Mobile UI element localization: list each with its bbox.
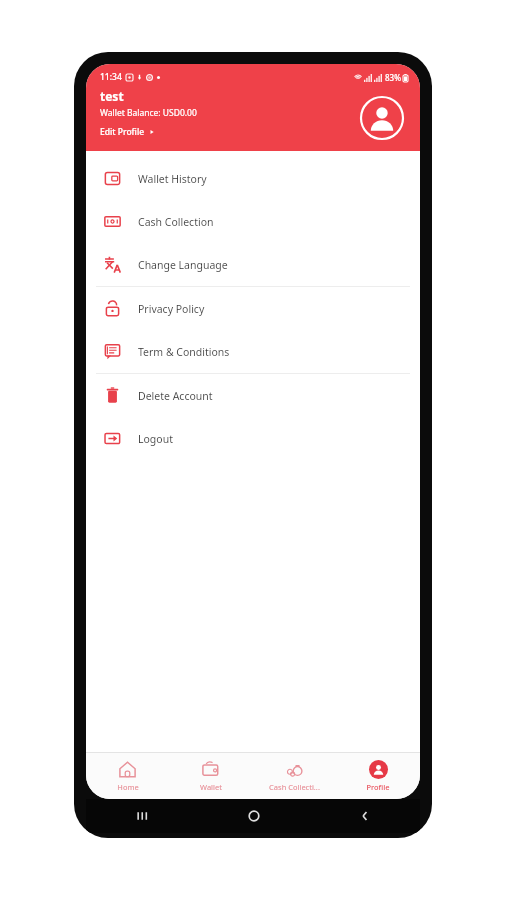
button[interactable]: Privacy Policy	[86, 287, 420, 330]
staticText: Cash Collection	[138, 215, 214, 229]
button[interactable]: Profile avatar	[360, 96, 404, 140]
button[interactable]: Wallet	[169, 753, 252, 799]
staticText: Wallet History	[138, 172, 207, 186]
staticText: Logout	[138, 432, 173, 446]
button[interactable]: Home	[198, 799, 309, 833]
button[interactable]: Wallet History	[86, 157, 420, 200]
staticText: 83%	[385, 72, 401, 83]
button[interactable]: Home	[86, 753, 169, 799]
button[interactable]: Change Language	[86, 243, 420, 286]
button[interactable]: Term & Conditions	[86, 330, 420, 373]
button[interactable]: Cash Collection	[86, 200, 420, 243]
button[interactable]: Logout	[86, 417, 420, 460]
staticText: Wallet	[200, 782, 222, 792]
staticText: Change Language	[138, 258, 228, 272]
staticText: Delete Account	[138, 389, 213, 403]
button[interactable]: Cash Collecti...	[252, 753, 336, 799]
button[interactable]: Recents	[86, 799, 198, 833]
staticText: Cash Collecti...	[269, 782, 320, 792]
staticText: test	[100, 88, 124, 104]
staticText: Home	[117, 782, 139, 792]
staticText: 11:34	[100, 71, 122, 83]
staticText: Profile	[366, 782, 390, 792]
staticText: Wallet Balance: USD0.00	[100, 107, 197, 119]
staticText: Term & Conditions	[138, 345, 230, 359]
staticText: Privacy Policy	[138, 302, 205, 316]
staticText: Edit Profile	[100, 126, 145, 138]
button[interactable]: Profile	[336, 753, 420, 799]
button[interactable]: Delete Account	[86, 374, 420, 417]
button[interactable]: Edit Profile	[100, 126, 155, 138]
button[interactable]: Back	[309, 799, 420, 833]
